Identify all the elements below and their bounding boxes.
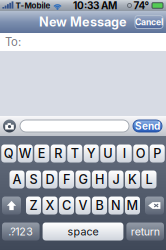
button[interactable]: H [92,170,107,188]
button[interactable]: Cancel [135,15,163,28]
button[interactable]: V [75,196,90,214]
staticText: M [126,198,138,213]
button[interactable]: J [108,170,123,188]
staticText: To: [5,35,21,49]
staticText: New Message [39,14,127,30]
staticText: C [62,198,71,213]
staticText: Send [135,120,160,132]
button[interactable]: E [34,144,49,162]
button[interactable]: T [67,144,82,162]
staticText: Z [29,198,37,213]
button[interactable]: W [18,144,33,162]
staticText: Cancel [135,17,163,27]
staticText: K [128,172,137,187]
button[interactable]: Z [26,196,41,214]
button[interactable]: To: [0,33,166,51]
staticText: N [111,198,121,213]
button[interactable]: R [51,144,66,162]
staticText: I [123,146,126,161]
staticText: 74° [133,0,149,12]
staticText: U [103,146,112,161]
staticText: A [12,172,21,187]
button[interactable]: X [42,196,57,214]
button[interactable] [20,120,129,132]
button[interactable]: Delete [145,196,164,214]
button[interactable]: .?123 [2,222,40,240]
button[interactable]: A [9,170,24,188]
button[interactable]: D [42,170,57,188]
button[interactable]: P [150,144,165,162]
staticText: Q [4,146,14,161]
button[interactable]: L [141,170,156,188]
button[interactable]: space [43,222,123,240]
button[interactable]: B [92,196,107,214]
staticText: J [112,172,119,187]
button[interactable]: K [125,170,140,188]
staticText: P [153,146,161,161]
staticText: S [29,172,37,187]
staticText: 10:33 AM [73,0,117,12]
staticText: O [136,146,146,161]
button[interactable]: F [59,170,74,188]
staticText: H [95,172,104,187]
button[interactable]: N [108,196,123,214]
staticText: V [78,198,87,213]
button[interactable]: I [117,144,132,162]
button[interactable]: U [100,144,115,162]
button[interactable]: Camera [3,119,16,132]
staticText: space [67,225,98,238]
staticText: Y [87,146,96,161]
staticText: D [45,172,54,187]
button[interactable]: O [133,144,148,162]
button[interactable]: G [75,170,90,188]
button[interactable]: C [59,196,74,214]
button[interactable]: Send [133,120,162,132]
staticText: return [131,225,160,238]
staticText: R [54,146,62,161]
staticText: E [38,146,46,161]
button[interactable]: Shift [2,196,21,214]
button[interactable]: M [125,196,140,214]
staticText: T-Mobile [15,1,50,10]
staticText: F [63,172,70,187]
staticText: W [19,146,32,161]
staticText: T [71,146,79,161]
button[interactable]: return [126,222,164,240]
button[interactable]: Q [1,144,16,162]
staticText: .?123 [8,225,33,238]
staticText: X [45,198,54,213]
staticText: G [78,172,87,187]
button[interactable]: Y [84,144,99,162]
staticText: L [145,172,152,187]
staticText: B [95,198,103,213]
button[interactable]: S [26,170,41,188]
